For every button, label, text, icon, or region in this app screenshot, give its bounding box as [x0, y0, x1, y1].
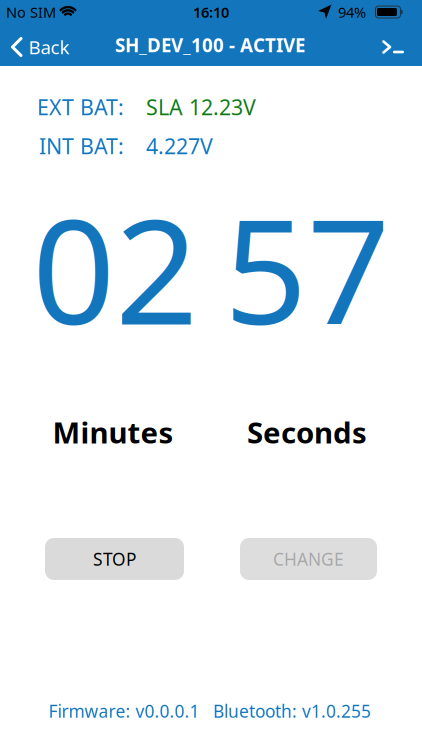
staticText: 16:10 [193, 2, 229, 22]
staticText: INT BAT: [39, 132, 124, 160]
staticText: 4.227V [146, 132, 213, 160]
staticText: SH_DEV_100 - ACTIVE [115, 33, 305, 57]
button[interactable]: STOP [45, 538, 184, 580]
staticText: EXT BAT: [37, 93, 124, 121]
staticText: SLA 12.23V [146, 93, 256, 121]
staticText: Minutes [52, 412, 173, 451]
staticText: Bluetooth: v1.0.255 [213, 699, 371, 722]
staticText: Firmware: v0.0.0.1 [48, 699, 199, 722]
button[interactable]: Back [10, 35, 69, 59]
staticText: STOP [93, 547, 136, 570]
staticText: 57 [224, 171, 390, 364]
button[interactable]: Terminal console [382, 39, 404, 55]
staticText: No SIM [6, 2, 56, 22]
staticText: 94% [338, 2, 366, 22]
staticText: CHANGE [273, 547, 344, 570]
button[interactable]: CHANGE [240, 538, 377, 580]
staticText: 02 [32, 171, 198, 364]
staticText: Back [28, 35, 69, 59]
staticText: Seconds [247, 412, 367, 451]
